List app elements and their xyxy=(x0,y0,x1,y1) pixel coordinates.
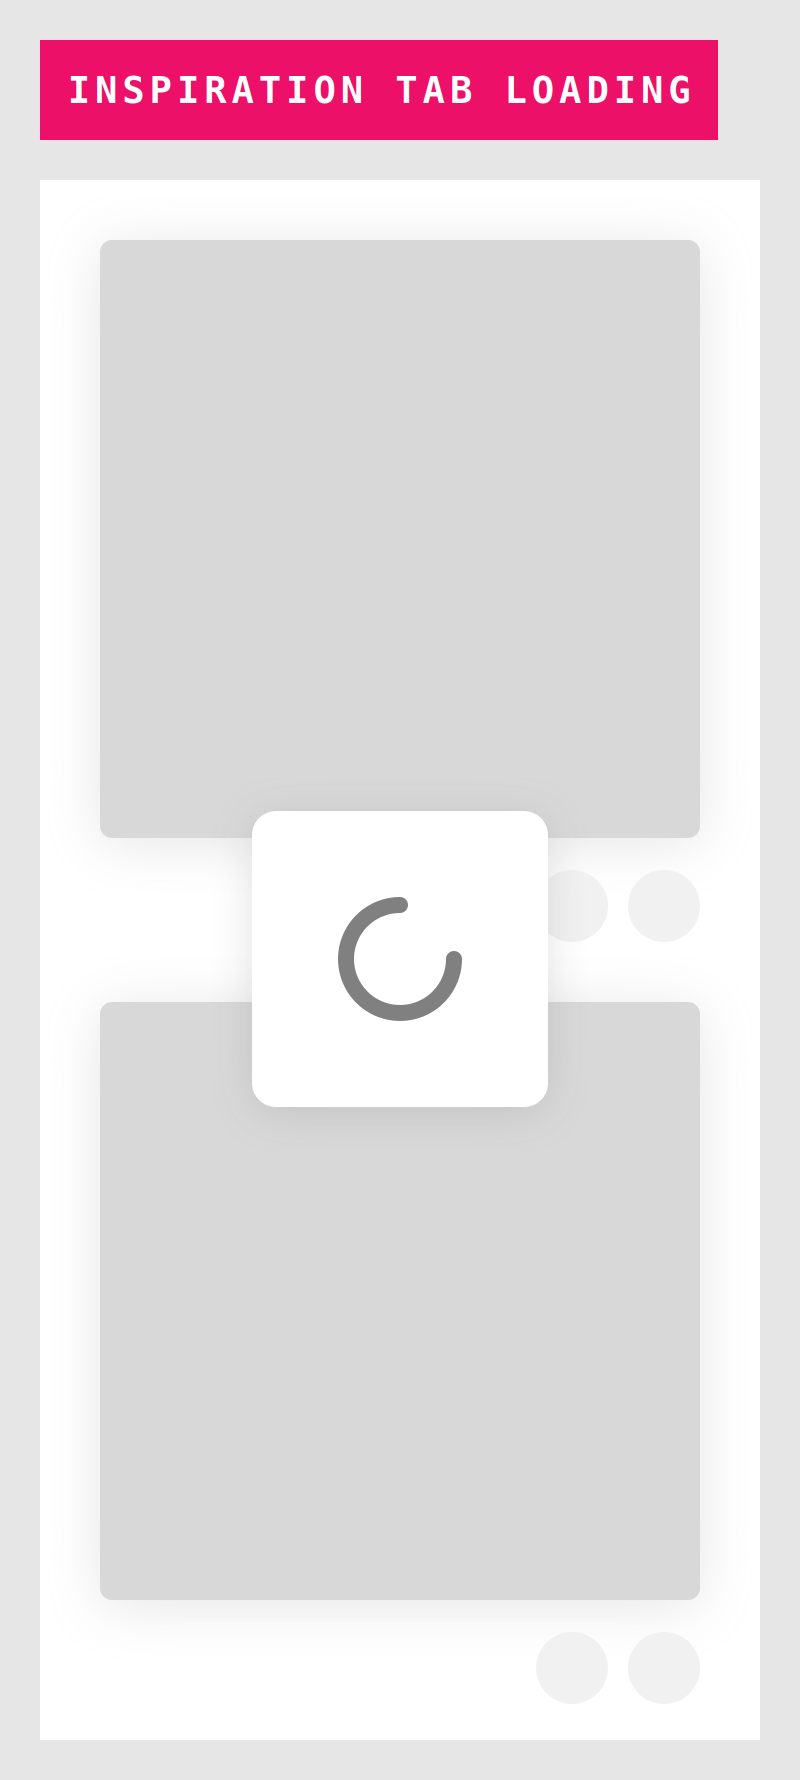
staticText: INSPIRATION TAB LOADING xyxy=(68,69,690,111)
